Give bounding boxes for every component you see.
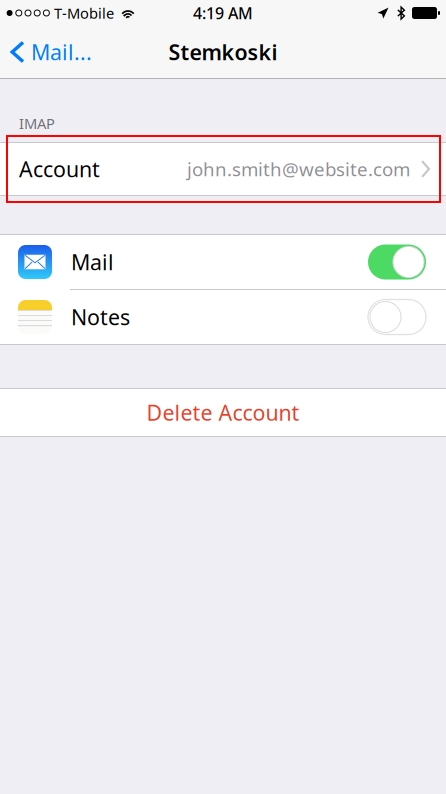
button[interactable]: Account xyxy=(0,143,446,195)
staticText: Mail xyxy=(71,248,114,276)
staticText: IMAP xyxy=(19,113,55,133)
staticText: Account xyxy=(19,155,100,183)
button[interactable]: Delete Account xyxy=(0,389,446,436)
staticText: Notes xyxy=(71,303,130,331)
staticText: 4:19 AM xyxy=(193,2,253,24)
staticText: Delete Account xyxy=(146,398,299,427)
staticText: Stemkoski xyxy=(168,38,277,66)
staticText: john.smith@website.com xyxy=(187,157,410,181)
staticText: T-Mobile xyxy=(54,3,114,23)
staticText: Mail... xyxy=(31,38,92,66)
button[interactable]: Mail... xyxy=(0,26,104,78)
